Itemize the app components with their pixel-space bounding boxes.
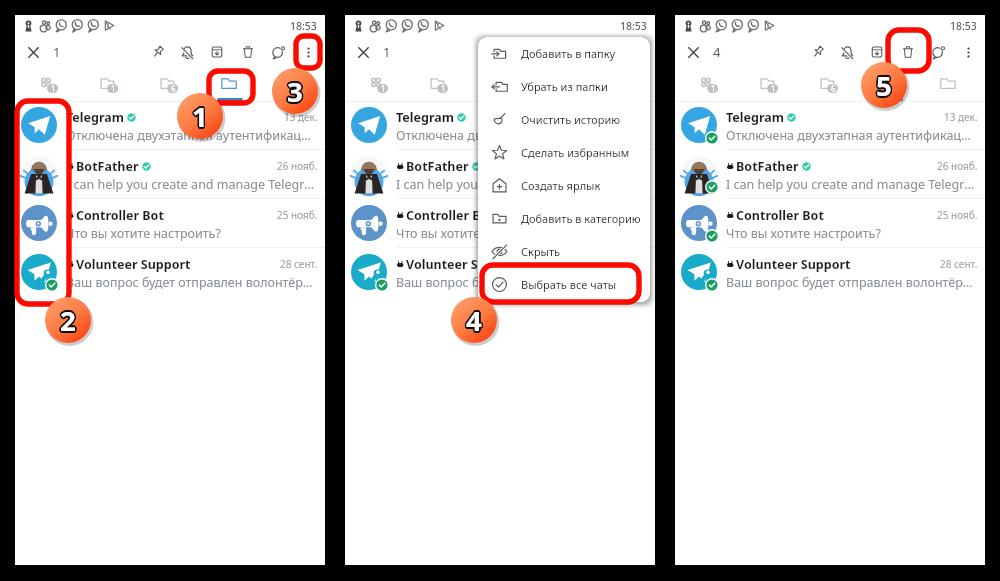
staticText: 28 сент.	[610, 257, 648, 271]
button[interactable]: Pin chat	[144, 38, 172, 66]
button[interactable]: Убрать из папки	[478, 70, 650, 103]
staticText: Telegram	[66, 109, 124, 126]
staticText: 1	[383, 43, 391, 61]
button[interactable]: More options	[954, 38, 982, 66]
staticText: Отключена двухэтапная аутентификация!…	[66, 127, 318, 144]
button[interactable]: Очистить историю	[478, 103, 650, 136]
staticText: BotFather	[406, 158, 469, 175]
button[interactable]: Telegram	[345, 101, 655, 149]
button[interactable]: All chats	[351, 66, 409, 101]
staticText: Telegram	[396, 109, 454, 126]
button[interactable]: Folder six	[471, 66, 529, 101]
button[interactable]: Volunteer Support	[15, 248, 325, 296]
staticText: 18:53	[290, 19, 317, 33]
button[interactable]: Volunteer Support	[345, 248, 655, 296]
staticText: 6	[171, 83, 176, 93]
button[interactable]: More options	[294, 38, 322, 66]
staticText: 1	[441, 83, 446, 93]
staticText: 6	[501, 83, 506, 93]
staticText: Что вы хотите настроить?	[726, 225, 978, 242]
button[interactable]: Сделать избранным	[478, 136, 650, 169]
button[interactable]: Folder one	[81, 66, 139, 101]
button[interactable]: Создать ярлык	[478, 169, 650, 202]
staticText: 6	[831, 83, 836, 93]
button[interactable]: Volunteer Support	[675, 248, 985, 296]
button[interactable]: Controller Bot	[15, 199, 325, 247]
button[interactable]: Добавить в папку	[478, 37, 650, 70]
staticText: Отключена двухэтапная аутентификация!…	[726, 127, 978, 144]
staticText: 1	[771, 83, 776, 93]
staticText: 13 дек.	[284, 110, 318, 124]
button[interactable]: Mute notifications	[503, 38, 531, 66]
button[interactable]: Close selection	[351, 40, 375, 64]
button[interactable]: Mute notifications	[833, 38, 861, 66]
staticText: Что вы хотите настроить?	[396, 225, 648, 242]
staticText: 1	[711, 83, 716, 93]
button[interactable]: More folders	[920, 66, 978, 101]
staticText: Ваш вопрос будет отправлен волонтёрам…	[726, 274, 978, 291]
button[interactable]: Скрыть	[478, 235, 650, 268]
button[interactable]: Archive	[203, 38, 231, 66]
button[interactable]: Selected folder	[531, 66, 589, 101]
staticText: Telegram	[726, 109, 784, 126]
staticText: 4	[713, 43, 721, 61]
button[interactable]: Selected folder	[201, 66, 259, 101]
button[interactable]: Selected folder	[861, 66, 919, 101]
button[interactable]: Mark as unread	[264, 38, 292, 66]
staticText: I can help you create and manage Telegra…	[66, 176, 318, 193]
button[interactable]: Delete	[234, 38, 262, 66]
staticText: 18:53	[620, 19, 647, 33]
staticText: Controller Bot	[76, 207, 164, 224]
button[interactable]: Close selection	[681, 40, 705, 64]
staticText: 1	[51, 83, 56, 93]
button[interactable]: Folder six	[141, 66, 199, 101]
button[interactable]: BotFather	[345, 150, 655, 198]
staticText: Volunteer Support	[76, 256, 191, 273]
staticText: Ваш вопрос будет отправлен волонтёрам…	[396, 274, 648, 291]
button[interactable]: Folder one	[741, 66, 799, 101]
button[interactable]: Выбрать все чаты	[478, 268, 650, 301]
staticText: 25 нояб.	[277, 208, 318, 222]
button[interactable]: Archive	[863, 38, 891, 66]
button[interactable]: More folders	[590, 66, 648, 101]
button[interactable]: More folders	[260, 66, 318, 101]
staticText: I can help you create and manage Telegra…	[396, 176, 648, 193]
staticText: 25 нояб.	[937, 208, 978, 222]
button[interactable]: Controller Bot	[675, 199, 985, 247]
staticText: Создать ярлык	[521, 178, 601, 193]
staticText: Добавить в категорию	[521, 211, 641, 226]
staticText: Controller Bot	[736, 207, 824, 224]
button[interactable]: All chats	[21, 66, 79, 101]
button[interactable]: Mark as unread	[594, 38, 622, 66]
button[interactable]: All chats	[681, 66, 739, 101]
staticText: 1	[381, 83, 386, 93]
button[interactable]: Close selection	[21, 40, 45, 64]
staticText: Что вы хотите настроить?	[66, 225, 318, 242]
button[interactable]: Delete	[564, 38, 592, 66]
button[interactable]: More options	[624, 38, 652, 66]
button[interactable]: Folder six	[801, 66, 859, 101]
button[interactable]: Добавить в категорию	[478, 202, 650, 235]
button[interactable]: Telegram	[675, 101, 985, 149]
button[interactable]: BotFather	[675, 150, 985, 198]
button[interactable]: BotFather	[15, 150, 325, 198]
button[interactable]: Mark as unread	[924, 38, 952, 66]
staticText: 13 дек.	[614, 110, 648, 124]
staticText: Добавить в папку	[521, 46, 616, 61]
button[interactable]: Telegram	[15, 101, 325, 149]
button[interactable]: Archive	[533, 38, 561, 66]
staticText: 1	[53, 43, 61, 61]
staticText: 28 сент.	[280, 257, 318, 271]
staticText: Ваш вопрос будет отправлен волонтёрам…	[66, 274, 318, 291]
staticText: Выбрать все чаты	[521, 277, 617, 292]
button[interactable]: Mute notifications	[173, 38, 201, 66]
button[interactable]: Controller Bot	[345, 199, 655, 247]
staticText: Сделать избранным	[521, 145, 630, 160]
staticText: 28 сент.	[940, 257, 978, 271]
staticText: 13 дек.	[944, 110, 978, 124]
button[interactable]: Pin chat	[474, 38, 502, 66]
button[interactable]: Pin chat	[804, 38, 832, 66]
button[interactable]: Folder one	[411, 66, 469, 101]
button[interactable]: Delete	[894, 38, 922, 66]
